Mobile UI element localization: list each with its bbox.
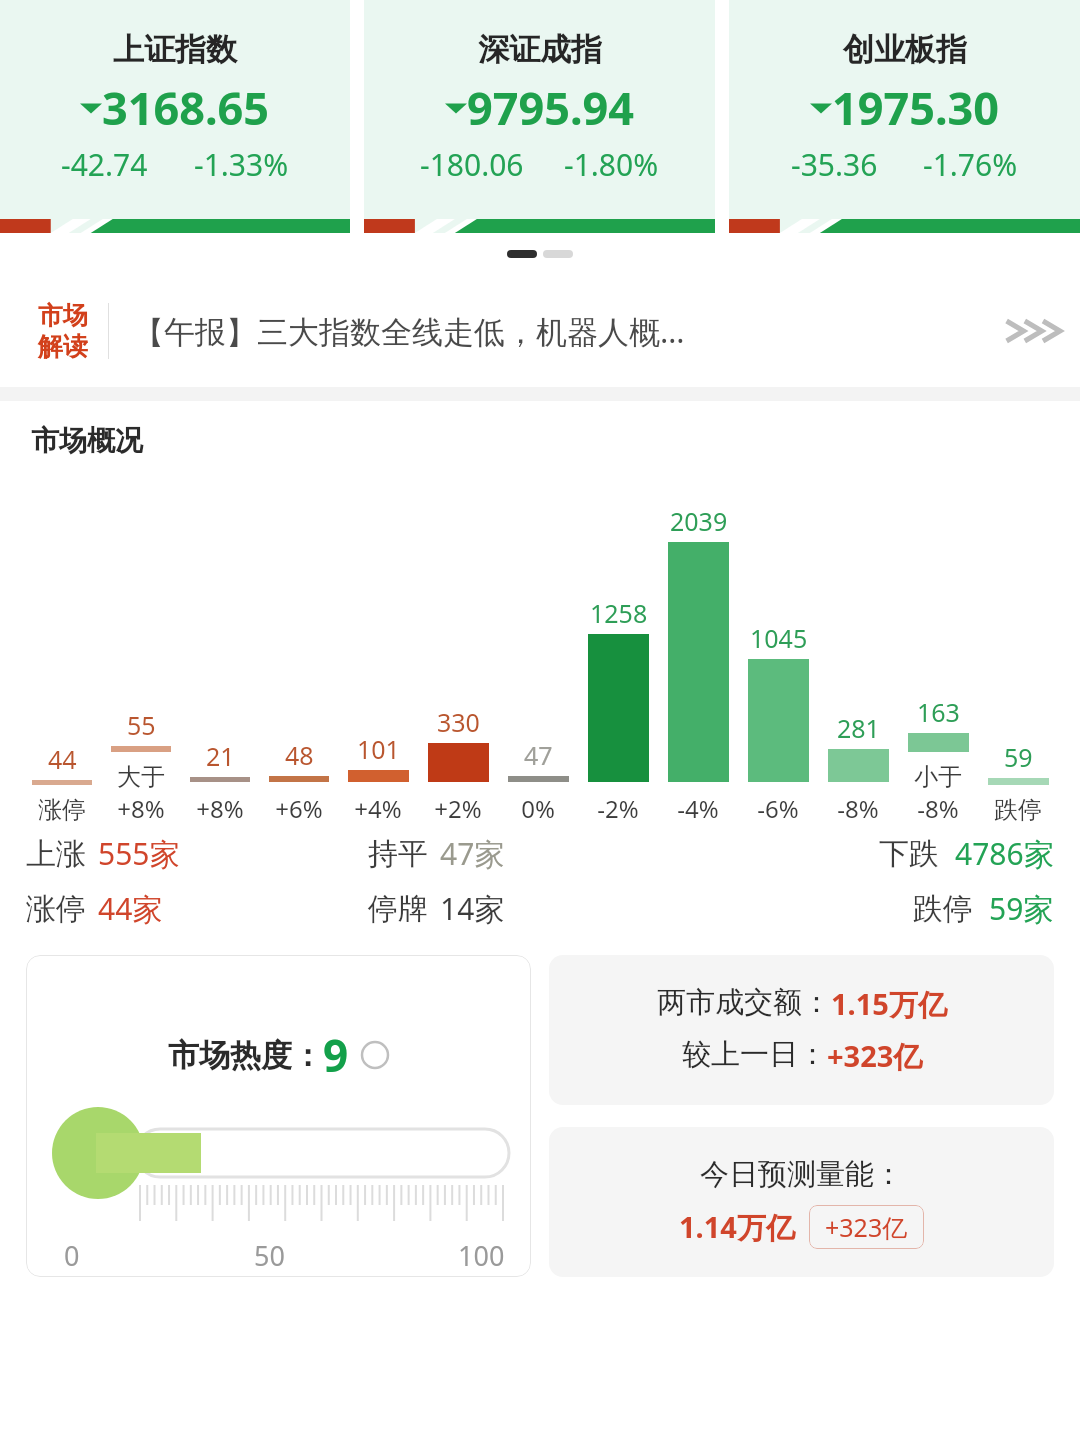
staticText: 市场概况: [31, 423, 143, 458]
button[interactable]: 今日预测量能：: [549, 1127, 1054, 1277]
staticText: 深证成指: [478, 30, 602, 69]
staticText: 59家: [989, 888, 1054, 929]
other: Help: [361, 1041, 389, 1069]
staticText: 跌停: [994, 795, 1042, 825]
staticText: -1.80%: [564, 144, 659, 185]
staticText: 1045: [750, 621, 808, 655]
staticText: -1.76%: [923, 144, 1018, 185]
staticText: 47家: [440, 833, 505, 874]
staticText: 涨停: [38, 795, 86, 825]
staticText: 101: [357, 732, 400, 766]
staticText: 较上一日：: [682, 1036, 827, 1073]
staticText: -1.33%: [194, 144, 289, 185]
button[interactable]: 市场热度：: [26, 955, 531, 1277]
staticText: -8%: [917, 792, 959, 825]
staticText: 涨停: [26, 890, 86, 928]
button[interactable]: 上证指数: [0, 0, 350, 233]
staticText: 持平: [368, 835, 428, 873]
staticText: 上涨: [26, 835, 86, 873]
staticText: 今日预测量能：: [700, 1156, 903, 1193]
staticText: 55: [127, 708, 156, 742]
staticText: +323亿: [827, 1036, 923, 1076]
staticText: 50: [254, 1237, 285, 1274]
staticText: 市场: [38, 300, 88, 331]
staticText: 创业板指: [843, 30, 967, 69]
staticText: 两市成交额：: [657, 984, 831, 1021]
staticText: 小于: [914, 762, 962, 792]
staticText: 44: [48, 742, 77, 776]
staticText: 163: [917, 695, 960, 729]
staticText: 1975.30: [832, 77, 1000, 138]
staticText: 大于: [117, 762, 165, 792]
staticText: 1.14万亿: [679, 1207, 795, 1247]
staticText: 下跌: [879, 835, 939, 873]
staticText: 48: [285, 738, 314, 772]
other: More news: [994, 311, 1064, 351]
button[interactable]: 两市成交额：: [549, 955, 1054, 1105]
staticText: -180.06: [420, 144, 524, 185]
staticText: 21: [206, 739, 235, 773]
staticText: 跌停: [913, 890, 973, 928]
staticText: 4786家: [955, 833, 1054, 874]
staticText: +4%: [354, 792, 402, 825]
staticText: 市场热度：: [168, 1036, 323, 1075]
staticText: 2039: [670, 504, 728, 538]
staticText: 14家: [440, 888, 505, 929]
staticText: -4%: [677, 792, 719, 825]
staticText: 555家: [98, 833, 180, 874]
staticText: 9: [323, 1025, 349, 1085]
button[interactable]: 创业板指: [729, 0, 1080, 233]
staticText: 0%: [521, 792, 555, 825]
staticText: 0: [64, 1237, 80, 1274]
staticText: +8%: [196, 792, 244, 825]
staticText: 100: [458, 1237, 505, 1274]
staticText: 9795.94: [467, 77, 635, 138]
staticText: 【午报】三大指数全线走低，机器人概…: [133, 310, 994, 352]
staticText: -42.74: [61, 144, 148, 185]
staticText: 停牌: [368, 890, 428, 928]
staticText: 59: [1004, 740, 1033, 774]
staticText: 47: [524, 738, 553, 772]
staticText: +8%: [117, 792, 165, 825]
staticText: 281: [837, 711, 880, 745]
staticText: 1.15万亿: [831, 984, 947, 1024]
staticText: 44家: [98, 888, 163, 929]
staticText: 1258: [590, 596, 648, 630]
staticText: -8%: [837, 792, 879, 825]
staticText: 上证指数: [113, 30, 237, 69]
staticText: 解读: [38, 331, 88, 362]
staticText: +6%: [275, 792, 323, 825]
button[interactable]: 市场: [0, 275, 1080, 387]
staticText: -35.36: [791, 144, 878, 185]
staticText: -2%: [597, 792, 639, 825]
staticText: +2%: [434, 792, 482, 825]
staticText: +323亿: [825, 1210, 908, 1244]
staticText: -6%: [757, 792, 799, 825]
staticText: 330: [437, 705, 480, 739]
button[interactable]: 深证成指: [364, 0, 715, 233]
staticText: 3168.65: [102, 77, 270, 138]
